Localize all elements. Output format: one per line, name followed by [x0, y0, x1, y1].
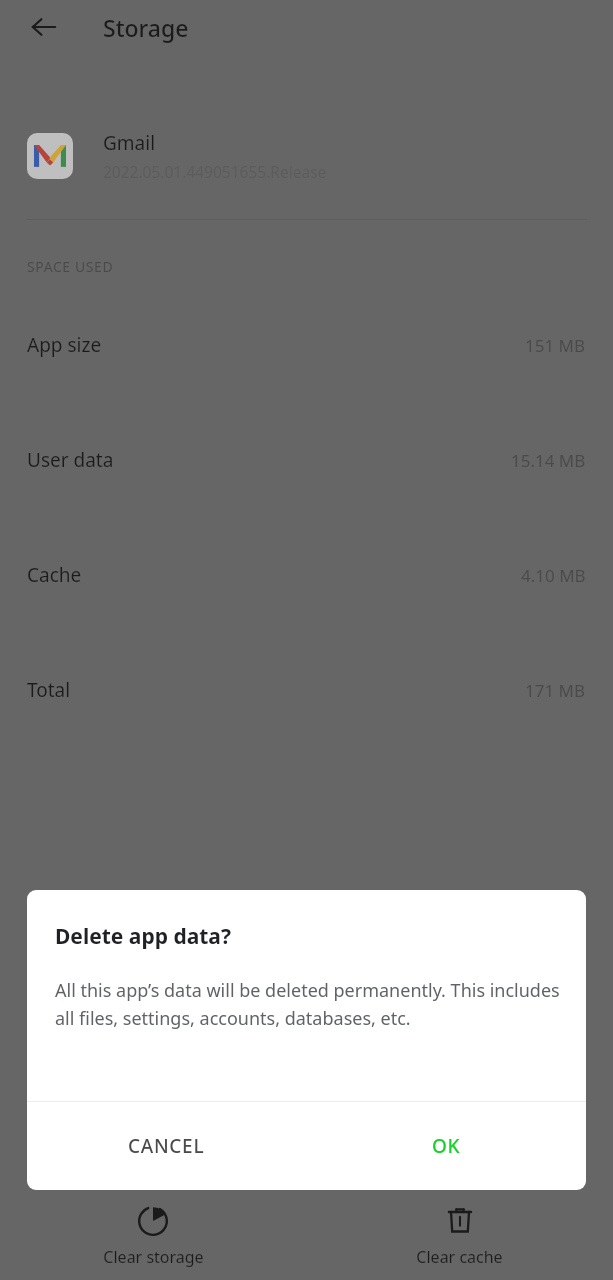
- button[interactable]: Cache: [0, 558, 613, 592]
- staticText: 171 MB: [525, 679, 586, 702]
- staticText: OK: [432, 1133, 461, 1159]
- staticText: Gmail: [103, 130, 156, 156]
- button[interactable]: CANCEL: [110, 1121, 223, 1171]
- staticText: Delete app data?: [55, 922, 231, 951]
- button[interactable]: Total: [0, 673, 613, 707]
- button[interactable]: App size: [0, 328, 613, 362]
- button[interactable]: Gmail: [0, 120, 613, 192]
- button[interactable]: User data: [0, 443, 613, 477]
- staticText: All this app’s data will be deleted perm…: [55, 978, 568, 1030]
- staticText: 2022.05.01.449051655.Release: [103, 161, 327, 182]
- button[interactable]: Clear cache: [306, 1200, 613, 1268]
- staticText: 15.14 MB: [511, 449, 586, 472]
- staticText: SPACE USED: [27, 257, 114, 276]
- staticText: 4.10 MB: [521, 564, 586, 587]
- staticText: CANCEL: [128, 1133, 205, 1159]
- staticText: Clear cache: [416, 1246, 503, 1268]
- button[interactable]: Back: [18, 1, 70, 53]
- staticText: User data: [27, 447, 114, 473]
- button[interactable]: Clear storage: [0, 1200, 306, 1268]
- staticText: 151 MB: [525, 334, 586, 357]
- staticText: Total: [27, 677, 71, 703]
- staticText: Clear storage: [103, 1246, 204, 1268]
- staticText: Cache: [27, 562, 82, 588]
- button[interactable]: OK: [414, 1121, 479, 1171]
- staticText: Storage: [103, 12, 189, 43]
- staticText: App size: [27, 332, 102, 358]
